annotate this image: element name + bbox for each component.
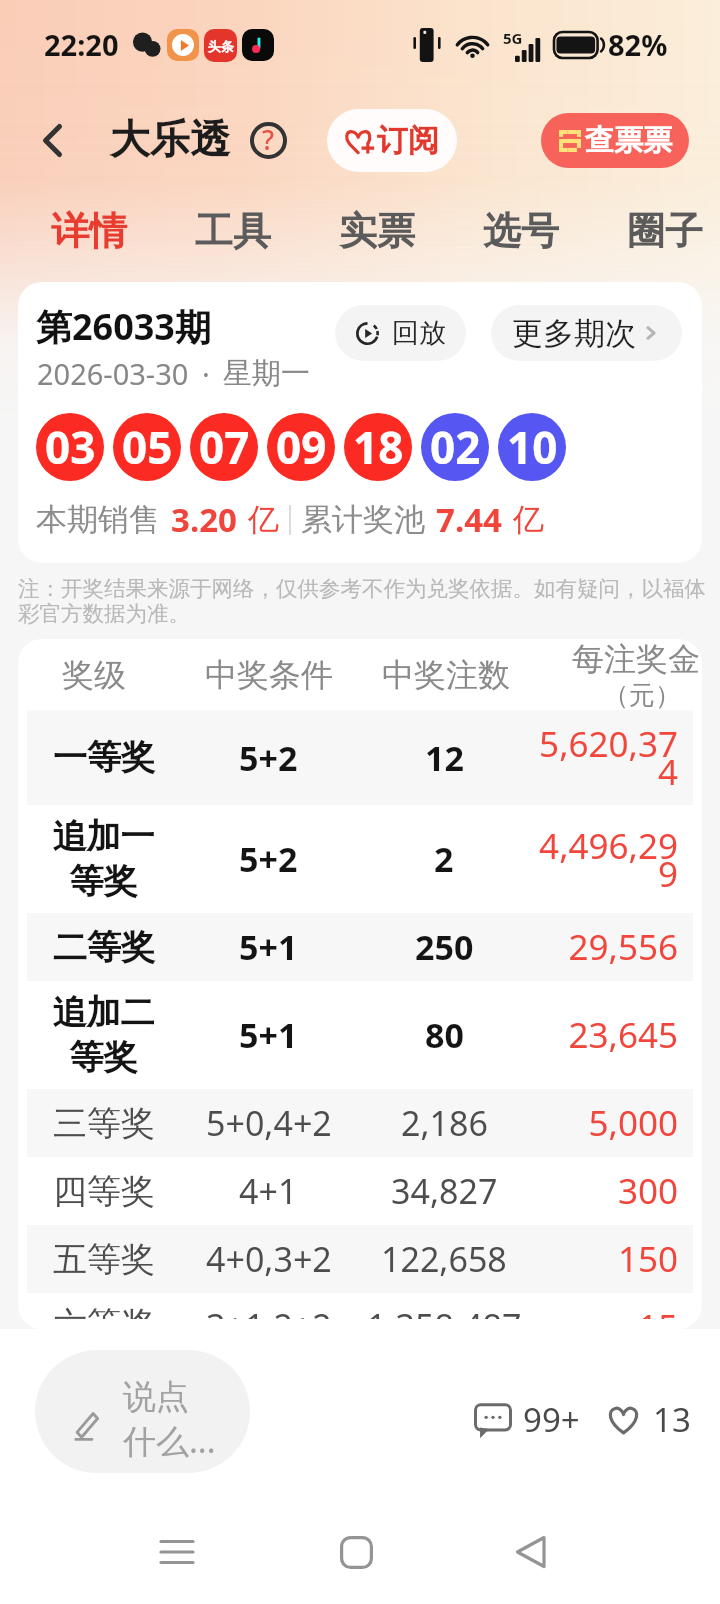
staticText: 追加二等奖 (43, 991, 164, 1079)
staticText: 六等奖 (53, 1303, 155, 1319)
button[interactable]: 更多期次 (491, 305, 682, 361)
button[interactable]: 实票 (305, 190, 449, 272)
staticText: 34,827 (391, 1168, 498, 1214)
staticText: 99+ (523, 1397, 580, 1442)
staticText: 3.20 (171, 497, 237, 542)
staticText: 29,556 (568, 923, 678, 971)
staticText: 一等奖 (53, 736, 155, 779)
button[interactable]: Back (22, 110, 82, 170)
staticText: 说点 (123, 1376, 189, 1418)
button[interactable]: 订阅 (327, 109, 457, 172)
staticText: 2026-03-30 (37, 354, 189, 393)
staticText: 更多期次 (512, 314, 636, 353)
staticText: 星期一 (223, 355, 310, 392)
staticText: 5,000 (588, 1099, 678, 1147)
button[interactable]: 二等奖 (27, 913, 693, 981)
button[interactable]: 追加二等奖 (27, 981, 693, 1089)
staticText: 二等奖 (53, 926, 155, 969)
button[interactable]: 选号 (449, 190, 593, 272)
button[interactable]: Back (495, 1517, 565, 1587)
staticText: 五等奖 (53, 1238, 155, 1281)
staticText: 中奖注数 (382, 655, 510, 695)
staticText: 5+2 (239, 735, 298, 781)
staticText: 13 (653, 1397, 691, 1442)
button[interactable]: 六等奖 (27, 1293, 693, 1329)
staticText: 22:20 (44, 25, 119, 64)
staticText: 三等奖 (53, 1102, 155, 1145)
staticText: 4+1 (239, 1168, 298, 1214)
staticText: 什么... (123, 1418, 216, 1463)
button[interactable]: 五等奖 (27, 1225, 693, 1293)
staticText: 7.44 (436, 497, 502, 542)
button[interactable]: 说点 (35, 1350, 250, 1473)
staticText: 80 (425, 1012, 464, 1058)
staticText: 亿 (513, 500, 544, 539)
staticText: 累计奖池 (301, 500, 425, 539)
staticText: 5+1 (239, 1012, 298, 1058)
staticText: 18 (353, 417, 404, 477)
button[interactable]: 查票票 (541, 113, 689, 168)
staticText: 大乐透 (110, 114, 230, 164)
staticText: 07 (199, 417, 250, 477)
staticText: 5+1 (239, 924, 298, 970)
button[interactable]: Home (321, 1517, 391, 1587)
staticText: 5G (503, 28, 523, 48)
button[interactable]: 一等奖 (27, 710, 693, 805)
staticText: 注：开奖结果来源于网络，仅供参考不作为兑奖依据。如有疑问，以福体彩官方数据为准。 (18, 575, 706, 628)
staticText: 查票票 (585, 122, 672, 159)
button[interactable]: Recent apps (142, 1517, 212, 1587)
button[interactable]: 四等奖 (27, 1157, 693, 1225)
staticText: 四等奖 (53, 1170, 155, 1213)
staticText: 122,658 (381, 1236, 507, 1282)
staticText: 02 (430, 417, 481, 477)
button[interactable]: 99+ (466, 1389, 588, 1450)
staticText: 选号 (483, 207, 559, 255)
staticText: 4+0,3+2 (206, 1236, 332, 1282)
staticText: 300 (617, 1167, 678, 1215)
staticText: 23,645 (568, 1011, 678, 1059)
staticText: 圈子 (627, 207, 703, 255)
staticText: 03 (45, 417, 96, 477)
button[interactable]: 三等奖 (27, 1089, 693, 1157)
staticText: 详情 (51, 207, 127, 255)
staticText: 12 (425, 735, 464, 781)
button[interactable]: Help (241, 113, 295, 167)
staticText: 回放 (392, 316, 446, 350)
staticText: 追加一等奖 (43, 815, 164, 903)
staticText: 中奖条件 (205, 655, 333, 695)
staticText: 15 (637, 1303, 678, 1319)
staticText: 4,496,299 (523, 822, 678, 897)
staticText: 每注奖金 (572, 639, 700, 679)
staticText: 5+0,4+2 (206, 1100, 332, 1146)
button[interactable]: 回放 (335, 305, 466, 361)
staticText: 实票 (339, 207, 415, 255)
staticText: ? (262, 121, 275, 158)
staticText: 2 (434, 836, 454, 882)
staticText: （元） (603, 679, 681, 710)
staticText: 10 (507, 417, 558, 477)
staticText: 奖级 (62, 655, 126, 695)
staticText: 82% (608, 25, 668, 64)
staticText: 头条 (208, 38, 234, 54)
staticText: 亿 (248, 500, 279, 539)
staticText: 05 (122, 417, 173, 477)
button[interactable]: 圈子 (593, 190, 720, 272)
staticText: 1,358,487 (367, 1303, 522, 1319)
staticText: 2,186 (401, 1100, 488, 1146)
button[interactable]: 工具 (161, 190, 305, 272)
staticText: 本期销售 (36, 500, 160, 539)
staticText: 5,620,374 (523, 720, 678, 795)
button[interactable]: 详情 (17, 190, 161, 272)
staticText: 5+2 (239, 836, 298, 882)
staticText: 订阅 (377, 121, 439, 160)
staticText: 250 (415, 924, 474, 970)
staticText: 第26033期 (36, 302, 211, 351)
button[interactable]: 13 (598, 1389, 699, 1450)
staticText: · (202, 354, 210, 393)
staticText: 150 (617, 1235, 678, 1283)
button[interactable]: 追加一等奖 (27, 805, 693, 913)
staticText: 3+1,2+2 (206, 1303, 332, 1319)
staticText: 工具 (195, 207, 271, 255)
staticText: 09 (276, 417, 327, 477)
